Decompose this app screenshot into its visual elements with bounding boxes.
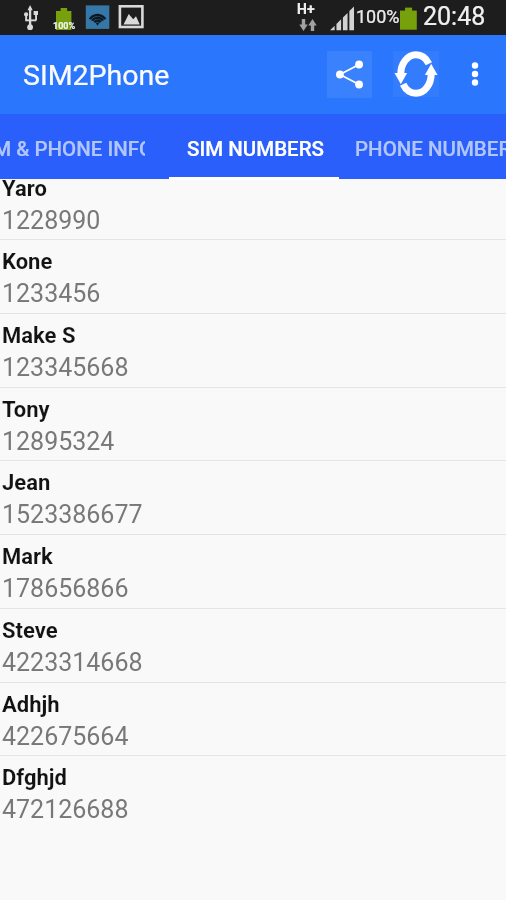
button[interactable]: Kone (0, 239, 506, 313)
staticText: Jean (2, 470, 51, 496)
staticText: SIM2Phone (23, 59, 170, 92)
staticText: SIM & PHONE INFO (0, 137, 145, 161)
button[interactable]: Dfghjd (0, 755, 506, 829)
button[interactable]: PHONE NUMBERS (338, 114, 506, 179)
staticText: 20:48 (423, 2, 486, 31)
staticText: Mark (2, 544, 53, 570)
staticText: Dfghjd (2, 765, 67, 791)
staticText: Kone (2, 249, 53, 275)
button[interactable]: Steve (0, 608, 506, 682)
staticText: 1233456 (2, 279, 101, 308)
staticText: Yaro (2, 176, 47, 202)
button[interactable]: Tony (0, 387, 506, 461)
button[interactable]: Yaro (0, 166, 506, 240)
staticText: Steve (2, 618, 58, 644)
button[interactable]: More options (455, 49, 495, 99)
staticText: 1228990 (2, 206, 101, 235)
button[interactable]: Refresh (393, 51, 439, 97)
button[interactable]: SIM NUMBERS (169, 114, 339, 179)
button[interactable]: Mark (0, 534, 506, 608)
staticText: PHONE NUMBERS (355, 137, 506, 161)
button[interactable]: Adhjh (0, 682, 506, 756)
button[interactable]: Jean (0, 460, 506, 534)
staticText: 100% (53, 21, 76, 32)
staticText: 12895324 (2, 427, 115, 456)
staticText: 1523386677 (2, 500, 143, 529)
staticText: 123345668 (2, 353, 129, 382)
button[interactable]: Make S (0, 313, 506, 387)
staticText: SIM NUMBERS (187, 137, 324, 161)
staticText: 472126688 (2, 795, 129, 824)
button[interactable]: Share (327, 51, 372, 98)
staticText: Tony (2, 397, 50, 423)
staticText: Make S (2, 323, 76, 349)
staticText: H+ (297, 1, 315, 17)
staticText: 178656866 (2, 574, 129, 603)
staticText: 100% (356, 6, 400, 27)
staticText: 4223314668 (2, 648, 143, 677)
staticText: 422675664 (2, 722, 129, 751)
staticText: Adhjh (2, 692, 60, 718)
button[interactable]: SIM & PHONE INFO (0, 114, 169, 179)
